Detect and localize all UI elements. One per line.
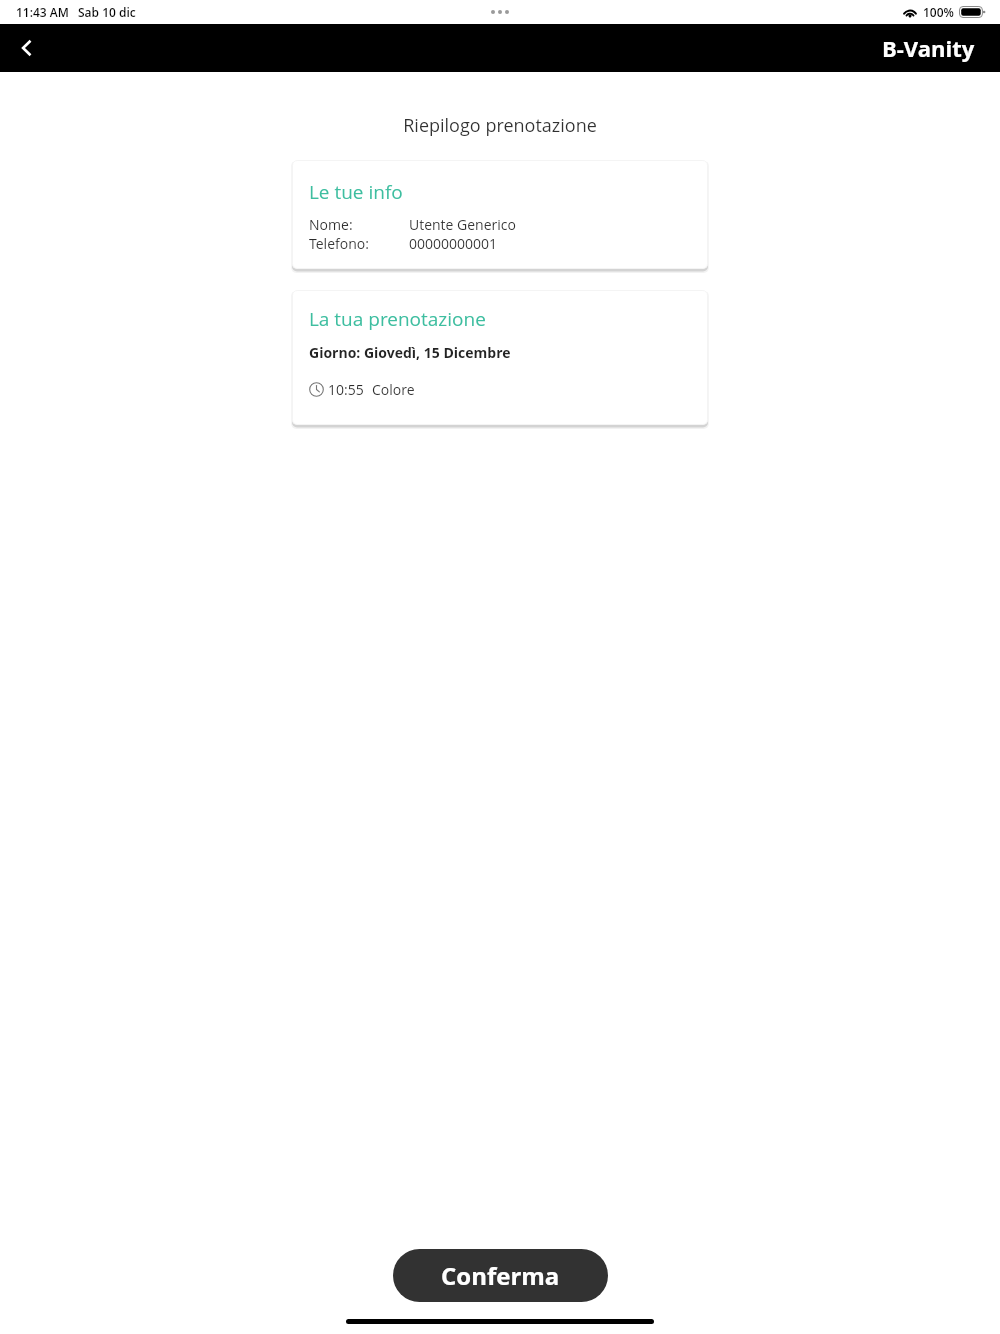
staticText: Nome: [309,215,353,234]
staticText: Riepilogo prenotazione [0,113,1000,138]
staticText: Giorno: Giovedì, 15 Dicembre [309,343,511,362]
button[interactable]: Back [6,27,48,69]
staticText: Telefono: [309,234,369,253]
staticText: 10:55 [328,380,364,399]
button[interactable]: Conferma [393,1249,608,1302]
staticText: La tua prenotazione [309,306,486,332]
staticText: Conferma [441,1259,560,1292]
staticText: 11:43 AM [16,4,69,20]
staticText: Sab 10 dic [78,4,136,20]
staticText: 100% [923,4,954,20]
staticText: Le tue info [309,179,403,205]
staticText: B-Vanity [882,33,975,63]
staticText: Utente Generico [409,215,516,234]
staticText: 00000000001 [409,234,498,253]
staticText: Colore [372,380,415,399]
